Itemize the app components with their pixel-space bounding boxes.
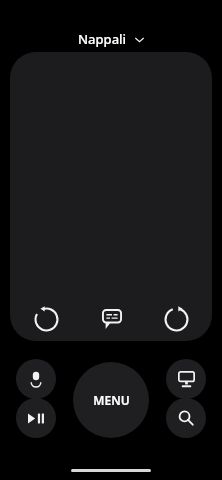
staticText: Nappali [78,30,127,48]
button[interactable]: Skip back 10 seconds [10,297,78,341]
button[interactable]: Search [166,398,206,438]
button[interactable]: Subtitles [78,297,145,341]
button[interactable]: MENU [73,362,149,438]
button[interactable]: Skip forward 10 seconds [145,297,212,341]
staticText: MENU [93,392,130,408]
button[interactable]: Voice search [16,359,56,399]
button[interactable]: Nappali [72,28,151,50]
button[interactable]: TV app [166,359,206,399]
button[interactable]: Play or pause [16,398,56,438]
